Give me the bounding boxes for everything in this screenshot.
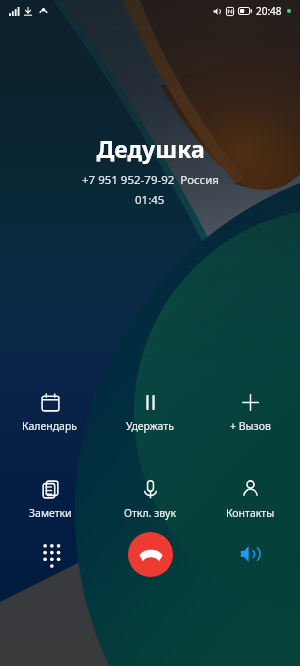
- staticText: Удержать: [126, 419, 174, 433]
- staticText: +7 951 952-79-92 Россия: [82, 172, 219, 188]
- staticText: Контакты: [226, 506, 275, 520]
- button[interactable]: + Вызов: [200, 392, 300, 433]
- button[interactable]: End call: [128, 532, 173, 577]
- staticText: 01:45: [135, 192, 165, 208]
- button[interactable]: Удержать: [100, 392, 200, 433]
- staticText: Календарь: [22, 419, 78, 433]
- staticText: 20:48: [256, 4, 282, 18]
- staticText: + Вызов: [230, 419, 271, 433]
- button[interactable]: Контакты: [200, 479, 300, 520]
- button[interactable]: Откл. звук: [100, 479, 200, 520]
- staticText: Откл. звук: [124, 506, 177, 520]
- button[interactable]: Dialpad: [27, 531, 73, 577]
- button[interactable]: Speaker: [227, 531, 273, 577]
- button[interactable]: Календарь: [0, 392, 100, 433]
- button[interactable]: Заметки: [0, 479, 100, 520]
- staticText: Заметки: [29, 506, 72, 520]
- staticText: Дедушка: [96, 133, 205, 164]
